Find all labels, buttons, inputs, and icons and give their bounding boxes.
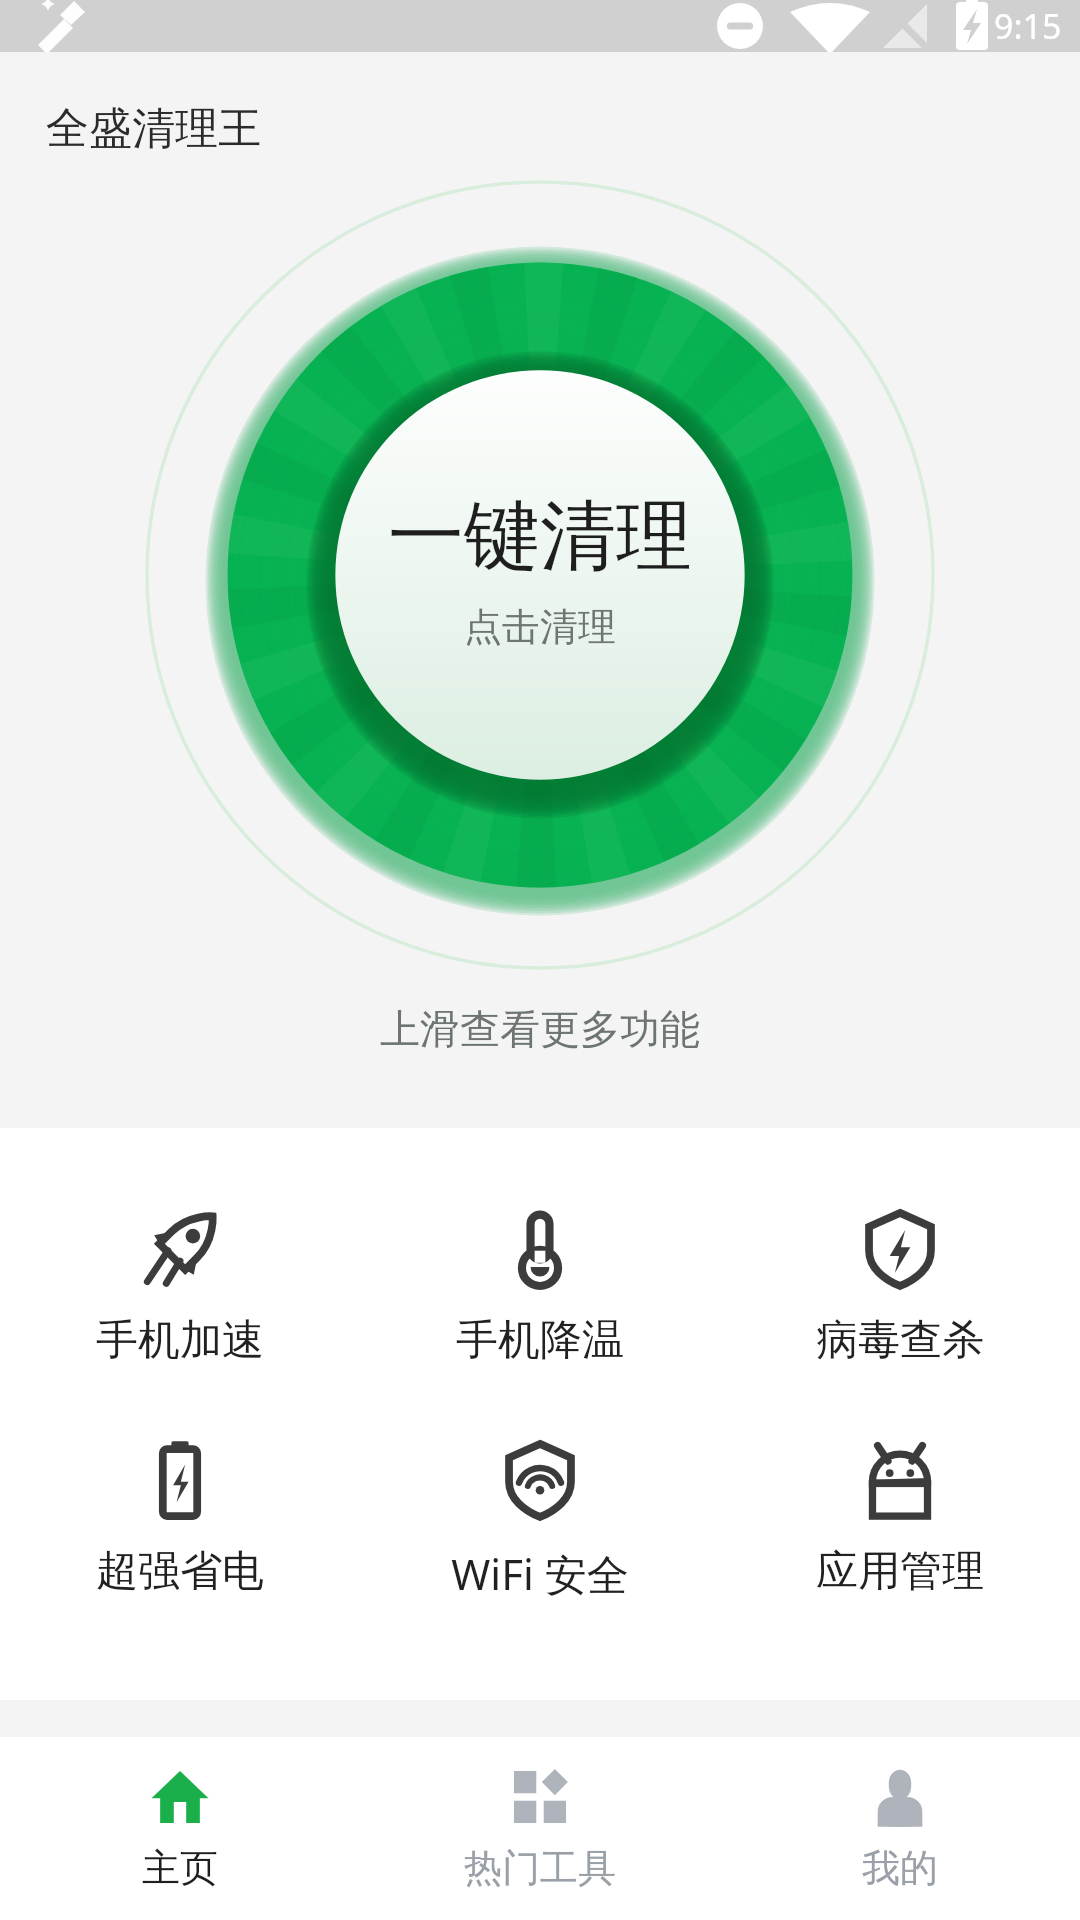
staticText: 一键清理 [388,489,692,585]
staticText: 上滑查看更多功能 [380,1004,700,1054]
button[interactable]: 一键清理 [145,180,935,970]
staticText: 手机加速 [96,1314,264,1367]
button[interactable]: 应用管理 [720,1431,1080,1604]
staticText: 全盛清理王 [46,102,261,156]
staticText: 主页 [142,1844,218,1892]
button[interactable]: 手机降温 [360,1200,720,1373]
staticText: 应用管理 [816,1545,984,1598]
staticText: 我的 [862,1844,938,1892]
staticText: 病毒查杀 [816,1314,984,1367]
button[interactable]: 我的 [720,1737,1080,1920]
staticText: 手机降温 [456,1314,624,1367]
staticText: 热门工具 [464,1844,616,1892]
button[interactable]: 主页 [0,1737,360,1920]
staticText: 点击清理 [464,603,616,651]
button[interactable]: 超强省电 [0,1431,360,1604]
staticText: WiFi 安全 [451,1545,629,1602]
button[interactable]: 热门工具 [360,1737,720,1920]
button[interactable]: 手机加速 [0,1200,360,1373]
button[interactable]: 病毒查杀 [720,1200,1080,1373]
button[interactable]: WiFi 安全 [360,1431,720,1608]
staticText: 9:15 [994,3,1062,49]
staticText: 超强省电 [96,1545,264,1598]
